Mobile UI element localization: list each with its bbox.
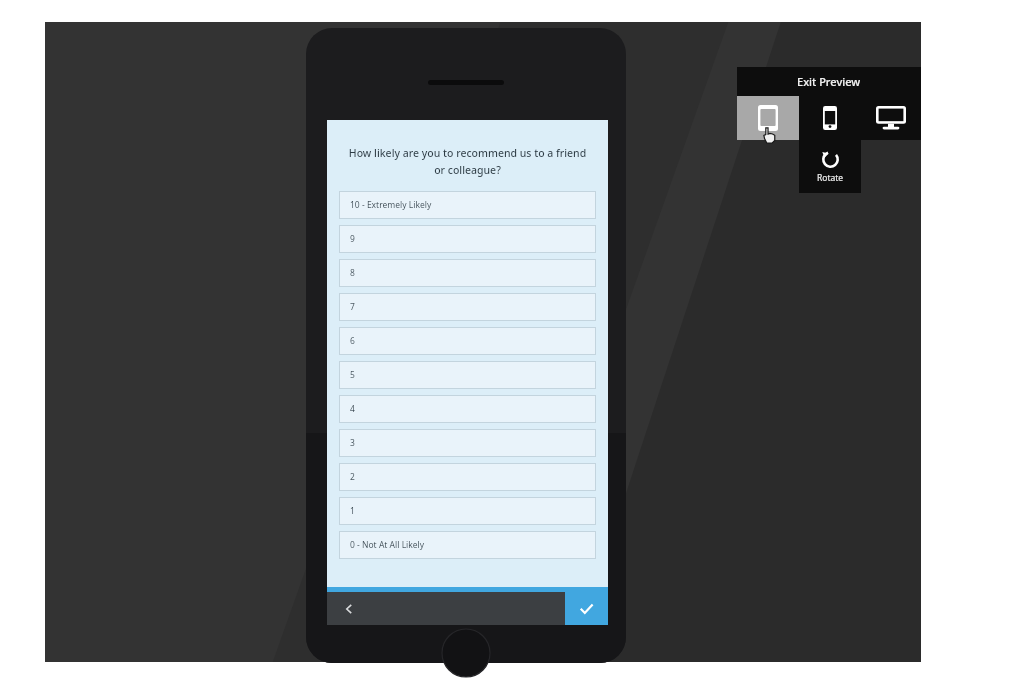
staticText: 10 - Extremely Likely xyxy=(350,199,432,211)
staticText: 5 xyxy=(350,369,355,381)
button[interactable]: 7 xyxy=(339,293,596,321)
staticText: 1 xyxy=(350,505,355,517)
button[interactable]: Submit xyxy=(565,592,608,625)
staticText: Rotate xyxy=(817,172,844,184)
button[interactable]: 4 xyxy=(339,395,596,423)
button[interactable]: Tablet preview xyxy=(737,96,799,140)
button[interactable]: 5 xyxy=(339,361,596,389)
button[interactable]: 8 xyxy=(339,259,596,287)
staticText: 3 xyxy=(350,437,355,449)
staticText: 7 xyxy=(350,301,355,313)
staticText: How likely are you to recommend us to a … xyxy=(343,146,592,177)
button[interactable]: 9 xyxy=(339,225,596,253)
button[interactable]: 3 xyxy=(339,429,596,457)
button[interactable]: Phone preview xyxy=(799,96,860,140)
staticText: 2 xyxy=(350,471,355,483)
staticText: 8 xyxy=(350,267,355,279)
staticText: 6 xyxy=(350,335,355,347)
button[interactable]: 2 xyxy=(339,463,596,491)
staticText: 0 - Not At All Likely xyxy=(350,539,425,551)
button[interactable]: Exit Preview xyxy=(737,67,921,96)
staticText: 9 xyxy=(350,233,355,245)
button[interactable]: Desktop preview xyxy=(860,96,921,140)
staticText: 4 xyxy=(350,403,355,415)
button[interactable]: Back xyxy=(327,592,371,625)
button[interactable]: 6 xyxy=(339,327,596,355)
button[interactable]: 0 - Not At All Likely xyxy=(339,531,596,559)
button[interactable]: 1 xyxy=(339,497,596,525)
button[interactable]: Rotate xyxy=(799,140,861,193)
staticText: Exit Preview xyxy=(797,74,861,89)
button[interactable]: 10 - Extremely Likely xyxy=(339,191,596,219)
